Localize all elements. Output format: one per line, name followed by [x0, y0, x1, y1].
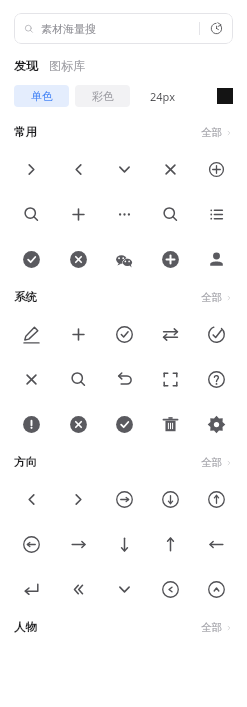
- button[interactable]: icon-0-2: [101, 147, 147, 192]
- button[interactable]: icon-3-1: [55, 312, 101, 357]
- button[interactable]: icon-0-0: [8, 147, 55, 192]
- staticText: 全部: [201, 456, 222, 469]
- button[interactable]: 图标库: [49, 56, 85, 75]
- button[interactable]: 搜索历史: [208, 20, 225, 37]
- button[interactable]: icon-8-1: [55, 567, 101, 612]
- staticText: 24px: [150, 89, 175, 104]
- button[interactable]: icon-1-2: [101, 192, 147, 237]
- button[interactable]: 全部: [201, 453, 233, 472]
- button[interactable]: icon-5-3: [147, 402, 193, 447]
- button[interactable]: icon-7-0: [8, 522, 55, 567]
- button[interactable]: 素材海量搜: [14, 13, 233, 44]
- button[interactable]: icon-1-4: [193, 192, 239, 237]
- button[interactable]: icon-8-3: [147, 567, 193, 612]
- button[interactable]: icon-7-4: [193, 522, 239, 567]
- button[interactable]: icon-2-0: [8, 237, 55, 282]
- button[interactable]: icon-5-0: [8, 402, 55, 447]
- button[interactable]: icon-7-2: [101, 522, 147, 567]
- button[interactable]: icon-2-3: [147, 237, 193, 282]
- button[interactable]: icon-7-3: [147, 522, 193, 567]
- staticText: 全部: [201, 621, 222, 634]
- staticText: 全部: [201, 291, 222, 304]
- button[interactable]: icon-0-3: [147, 147, 193, 192]
- button[interactable]: icon-5-4: [193, 402, 239, 447]
- button[interactable]: 彩色: [75, 85, 130, 107]
- button[interactable]: icon-4-0: [8, 357, 55, 402]
- button[interactable]: 单色: [14, 85, 69, 107]
- button[interactable]: icon-3-4: [193, 312, 239, 357]
- button[interactable]: icon-4-3: [147, 357, 193, 402]
- button[interactable]: icon-4-1: [55, 357, 101, 402]
- button[interactable]: icon-3-2: [101, 312, 147, 357]
- button[interactable]: icon-2-1: [55, 237, 101, 282]
- button[interactable]: icon-2-2: [101, 237, 147, 282]
- button[interactable]: 全部: [201, 288, 233, 307]
- button[interactable]: icon-8-0: [8, 567, 55, 612]
- button[interactable]: 24px: [148, 89, 177, 104]
- button[interactable]: icon-6-1: [55, 477, 101, 522]
- staticText: 人物: [14, 620, 37, 634]
- button[interactable]: icon-5-1: [55, 402, 101, 447]
- button[interactable]: icon-1-1: [55, 192, 101, 237]
- staticText: 常用: [14, 125, 37, 139]
- button[interactable]: icon-3-3: [147, 312, 193, 357]
- button[interactable]: icon-6-3: [147, 477, 193, 522]
- staticText: 彩色: [92, 89, 114, 103]
- button[interactable]: icon-6-0: [8, 477, 55, 522]
- button[interactable]: icon-2-4: [193, 237, 239, 282]
- staticText: 素材海量搜: [41, 22, 96, 36]
- button[interactable]: icon-1-0: [8, 192, 55, 237]
- button[interactable]: icon-8-2: [101, 567, 147, 612]
- button[interactable]: icon-6-2: [101, 477, 147, 522]
- button[interactable]: icon-0-1: [55, 147, 101, 192]
- button[interactable]: 全部: [201, 618, 233, 637]
- staticText: 图标库: [49, 58, 85, 73]
- staticText: 系统: [14, 290, 37, 304]
- button[interactable]: 发现: [14, 56, 38, 75]
- staticText: 方向: [14, 455, 37, 469]
- button[interactable]: icon-5-2: [101, 402, 147, 447]
- staticText: 全部: [201, 126, 222, 139]
- button[interactable]: icon-0-4: [193, 147, 239, 192]
- button[interactable]: icon-1-3: [147, 192, 193, 237]
- button[interactable]: icon-8-4: [193, 567, 239, 612]
- button[interactable]: 全部: [201, 123, 233, 142]
- button[interactable]: icon-3-0: [8, 312, 55, 357]
- staticText: 单色: [31, 89, 53, 103]
- button[interactable]: icon-4-2: [101, 357, 147, 402]
- button[interactable]: icon-7-1: [55, 522, 101, 567]
- button[interactable]: icon-4-4: [193, 357, 239, 402]
- staticText: 发现: [14, 58, 38, 73]
- button[interactable]: icon-6-4: [193, 477, 239, 522]
